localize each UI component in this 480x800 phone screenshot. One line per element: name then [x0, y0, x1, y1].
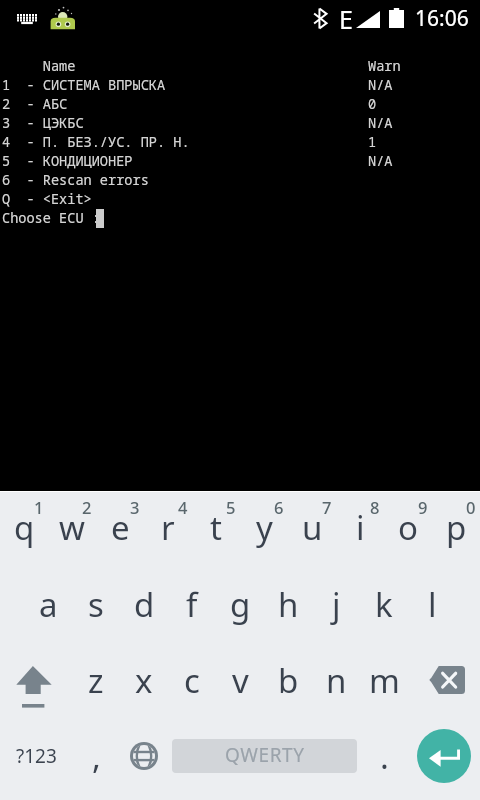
button[interactable]: 8 [336, 492, 384, 568]
staticText: f [186, 582, 198, 627]
staticText: h [278, 582, 299, 627]
button[interactable]: n [312, 644, 360, 720]
staticText: l [428, 582, 437, 627]
staticText: 6 [274, 496, 284, 518]
staticText: 4 [178, 496, 188, 518]
staticText: 7 [322, 496, 332, 518]
staticText: , [92, 734, 101, 779]
button[interactable]: m [360, 644, 408, 720]
button[interactable]: Backspace [408, 644, 480, 720]
button[interactable]: 9 [384, 492, 432, 568]
staticText: t [210, 505, 222, 550]
staticText: y [256, 505, 273, 550]
staticText: j [332, 582, 341, 627]
button[interactable]: s [72, 568, 120, 644]
staticText: 16:06 [415, 4, 469, 33]
button[interactable]: l [408, 568, 456, 644]
staticText: 1 [34, 496, 44, 518]
other: Keyboard [17, 14, 37, 25]
button[interactable]: . [360, 720, 408, 800]
button[interactable]: , [72, 720, 120, 800]
staticText: z [88, 658, 104, 703]
button[interactable]: Enter [408, 720, 480, 800]
button[interactable]: g [216, 568, 264, 644]
staticText: 4 - П. БЕЗ./УС. ПР. Н. [2, 132, 190, 151]
button[interactable]: 0 [432, 492, 480, 568]
staticText: 2 [82, 496, 92, 518]
button[interactable]: 6 [240, 492, 288, 568]
staticText: 5 [226, 496, 236, 518]
button[interactable]: QWERTY [168, 720, 360, 800]
button[interactable]: x [120, 644, 168, 720]
staticText: s [88, 582, 104, 627]
button[interactable]: j [312, 568, 360, 644]
other: Battery [389, 8, 404, 28]
staticText: g [230, 582, 251, 627]
button[interactable]: 4 [144, 492, 192, 568]
staticText: 3 - ЦЭКБС [2, 113, 84, 132]
staticText: Q - <Exit> [2, 189, 92, 208]
button[interactable]: 5 [192, 492, 240, 568]
button[interactable]: c [168, 644, 216, 720]
staticText: d [134, 582, 155, 627]
staticText: m [369, 658, 400, 703]
staticText: u [302, 505, 323, 550]
staticText: x [135, 658, 153, 703]
button[interactable]: h [264, 568, 312, 644]
button[interactable]: v [216, 644, 264, 720]
staticText: 1 - СИСТЕМА ВПРЫСКА [2, 75, 166, 94]
staticText: c [184, 658, 200, 703]
staticText: p [446, 505, 467, 550]
other: Mobile signal [356, 11, 380, 28]
staticText: Name [2, 56, 76, 75]
staticText: 2 - АБС [2, 94, 68, 113]
button[interactable]: b [264, 644, 312, 720]
staticText: 9 [418, 496, 428, 518]
staticText: i [356, 505, 365, 550]
staticText: w [59, 505, 85, 550]
button[interactable]: k [360, 568, 408, 644]
staticText: 1 [368, 132, 377, 151]
staticText: 0 [368, 94, 377, 113]
staticText: N/A [368, 113, 393, 132]
staticText: 5 - КОНДИЦИОНЕР [2, 151, 133, 170]
staticText: QWERTY [225, 742, 305, 768]
staticText: ?123 [16, 743, 57, 769]
staticText: k [375, 582, 393, 627]
button[interactable]: 7 [288, 492, 336, 568]
staticText: b [278, 658, 299, 703]
staticText: Warn [368, 56, 401, 75]
staticText: 3 [130, 496, 140, 518]
staticText: E [339, 2, 353, 36]
staticText: . [380, 734, 389, 779]
button[interactable]: z [72, 644, 120, 720]
button[interactable]: 3 [96, 492, 144, 568]
staticText: N/A [368, 151, 393, 170]
button[interactable]: 1 [0, 492, 48, 568]
button[interactable]: ?123 [0, 720, 72, 800]
staticText: 0 [466, 496, 476, 518]
staticText: N/A [368, 75, 393, 94]
staticText: 6 - Rescan errors [2, 170, 149, 189]
button[interactable]: Change language [120, 720, 168, 800]
button[interactable]: f [168, 568, 216, 644]
staticText: a [39, 582, 58, 627]
staticText: e [111, 505, 130, 550]
other: Bluetooth on [313, 8, 327, 29]
staticText: q [14, 505, 35, 550]
staticText: 8 [370, 496, 380, 518]
staticText: v [232, 658, 249, 703]
button[interactable]: 2 [48, 492, 96, 568]
staticText: Choose ECU : [2, 208, 100, 227]
button[interactable]: a [24, 568, 72, 644]
button[interactable]: Shift [0, 644, 72, 720]
button[interactable]: d [120, 568, 168, 644]
staticText: o [398, 505, 418, 550]
staticText: r [161, 505, 175, 550]
staticText: n [326, 658, 347, 703]
